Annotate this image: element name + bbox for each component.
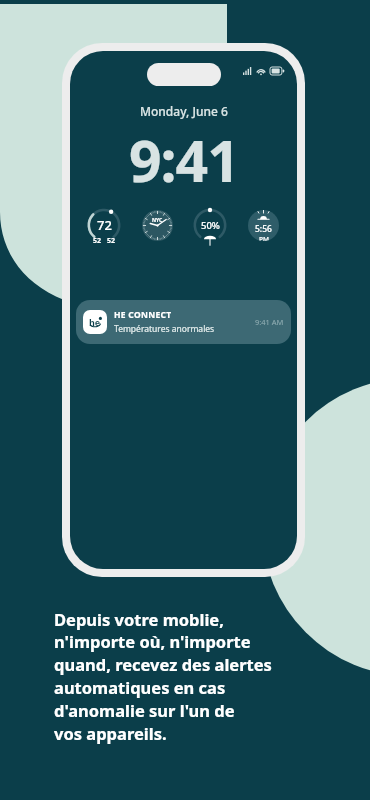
button[interactable]: Weather 72 degrees (82, 207, 126, 251)
button[interactable]: Rain chance 50 percent (188, 207, 232, 251)
staticText: 9:41 (129, 121, 239, 199)
staticText: 52 (107, 236, 116, 246)
staticText: 72 (97, 216, 112, 234)
other: Weather 72 degrees (82, 207, 126, 251)
staticText: Températures anormales (114, 323, 215, 335)
other: World clock NYC (142, 210, 173, 241)
staticText: Depuis votre moblie, n'importe où, n'imp… (54, 608, 272, 744)
staticText: he (89, 316, 101, 328)
other: Sunset 5:56 PM (248, 210, 279, 241)
button[interactable]: Sunset 5:56 PM (241, 207, 285, 251)
staticText: 9:41 AM (255, 317, 284, 327)
other: Rain chance 50 percent (188, 207, 232, 251)
staticText: NYC (152, 217, 163, 224)
staticText: Monday, June 6 (140, 103, 228, 119)
staticText: 5:56 (255, 223, 272, 235)
staticText: 52 (93, 236, 102, 246)
button[interactable]: World clock NYC (135, 207, 179, 251)
button[interactable]: he (76, 300, 291, 344)
staticText: PM (259, 235, 269, 241)
staticText: HE CONNECT (114, 309, 172, 321)
staticText: 50% (201, 219, 220, 232)
